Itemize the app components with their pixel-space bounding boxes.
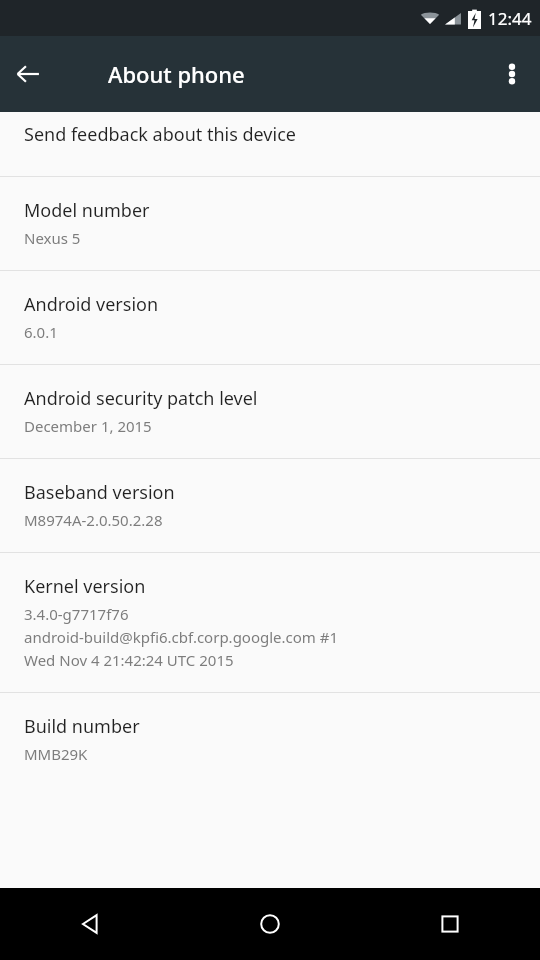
staticText: 3.4.0-g7717f76 xyxy=(24,604,129,624)
button[interactable]: Back xyxy=(0,888,180,960)
staticText: M8974A-2.0.50.2.28 xyxy=(24,510,163,530)
button[interactable]: Recent apps xyxy=(360,888,540,960)
staticText: 12:44 xyxy=(488,7,532,30)
button[interactable]: Android security patch level xyxy=(0,365,540,458)
button[interactable]: Send feedback about this device xyxy=(0,112,540,176)
staticText: December 1, 2015 xyxy=(24,416,152,436)
staticText: 6.0.1 xyxy=(24,322,58,342)
staticText: Android version xyxy=(24,292,159,317)
staticText: About phone xyxy=(108,59,245,89)
staticText: Android security patch level xyxy=(24,386,258,411)
staticText: Wed Nov 4 21:42:24 UTC 2015 xyxy=(24,650,234,670)
staticText: Baseband version xyxy=(24,480,175,505)
button[interactable]: Android version xyxy=(0,271,540,364)
staticText: Send feedback about this device xyxy=(24,122,296,147)
staticText: Kernel version xyxy=(24,574,146,599)
staticText: android-build@kpfi6.cbf.corp.google.com … xyxy=(24,627,339,647)
button[interactable]: Kernel version xyxy=(0,553,540,692)
button[interactable]: Back xyxy=(0,46,56,102)
button[interactable]: Home xyxy=(180,888,360,960)
button[interactable]: Baseband version xyxy=(0,459,540,552)
staticText: Nexus 5 xyxy=(24,228,81,248)
button[interactable]: More options xyxy=(484,46,540,102)
button[interactable]: Build number xyxy=(0,693,540,786)
staticText: Build number xyxy=(24,714,140,739)
staticText: Model number xyxy=(24,198,150,223)
button[interactable]: Model number xyxy=(0,177,540,270)
staticText: MMB29K xyxy=(24,744,88,764)
